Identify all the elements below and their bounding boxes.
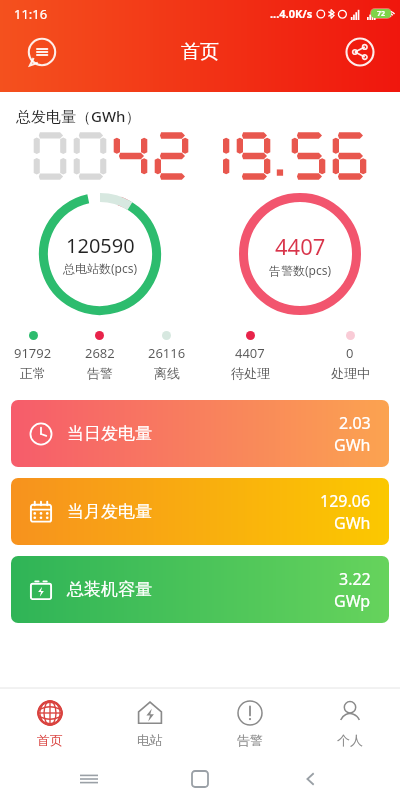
staticText: 首页: [37, 732, 63, 748]
staticText: 72: [377, 9, 386, 19]
staticText: 正常: [20, 365, 46, 381]
other: Back: [302, 770, 320, 788]
staticText: 待处理: [231, 365, 270, 381]
other: Recents: [80, 770, 98, 788]
button[interactable]: Share: [338, 30, 382, 74]
staticText: 告警数(pcs): [269, 262, 332, 278]
staticText: 总电站数(pcs): [63, 260, 138, 276]
button[interactable]: 当月发电量: [11, 478, 389, 545]
other: Home: [192, 771, 208, 787]
staticText: 0: [346, 344, 354, 362]
staticText: ...4.0K/s: [270, 6, 313, 21]
staticText: 2.03: [339, 412, 371, 434]
staticText: 120590: [66, 232, 135, 259]
staticText: 26116: [148, 344, 186, 362]
staticText: GWh: [334, 434, 371, 456]
staticText: 当月发电量: [67, 501, 152, 522]
staticText: 总装机容量: [67, 579, 152, 600]
button[interactable]: Messages: [20, 30, 64, 74]
staticText: 91792: [14, 344, 52, 362]
staticText: 11:16: [14, 5, 48, 23]
staticText: 首页: [181, 40, 219, 64]
staticText: 电站: [137, 732, 163, 748]
button[interactable]: 当日发电量: [11, 400, 389, 467]
staticText: 告警: [237, 732, 263, 748]
staticText: 4407: [275, 231, 326, 261]
button[interactable]: 告警: [200, 688, 300, 758]
button[interactable]: 首页: [0, 688, 100, 758]
staticText: 处理中: [331, 365, 370, 381]
button[interactable]: 电站: [100, 688, 200, 758]
staticText: GWh: [334, 512, 371, 534]
staticText: 个人: [337, 732, 363, 748]
staticText: 2682: [85, 344, 115, 362]
staticText: 告警: [87, 365, 113, 381]
staticText: 3.22: [339, 568, 371, 590]
staticText: 129.06: [320, 490, 371, 512]
button[interactable]: 总装机容量: [11, 556, 389, 623]
staticText: 4407: [235, 344, 265, 362]
button[interactable]: 个人: [300, 688, 400, 758]
staticText: GWp: [334, 590, 371, 612]
staticText: 总发电量（GWh）: [16, 106, 141, 126]
staticText: 离线: [154, 365, 180, 381]
staticText: 当日发电量: [67, 423, 152, 444]
